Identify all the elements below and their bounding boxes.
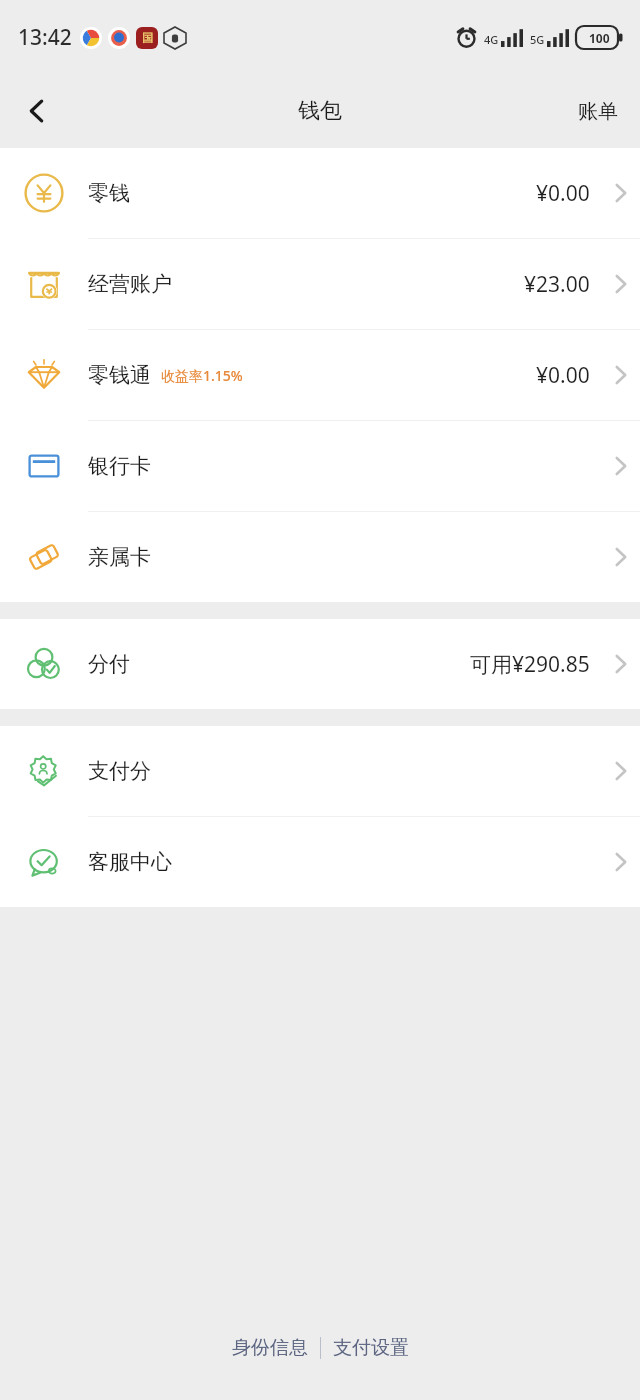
- staticText: 钱包: [298, 97, 342, 125]
- staticText: 零钱: [88, 180, 130, 206]
- button[interactable]: 亲属卡: [0, 512, 640, 602]
- staticText: 收益率1.15%: [161, 366, 243, 385]
- button[interactable]: Back: [0, 74, 74, 148]
- button[interactable]: 客服中心: [0, 817, 640, 907]
- button[interactable]: 账单: [556, 81, 640, 142]
- staticText: 分付: [88, 651, 130, 677]
- staticText: 银行卡: [88, 453, 151, 479]
- staticText: 支付分: [88, 758, 151, 784]
- button[interactable]: 支付设置: [321, 1328, 421, 1368]
- staticText: 100: [589, 30, 610, 46]
- staticText: 亲属卡: [88, 544, 151, 570]
- staticText: 5G: [530, 32, 545, 47]
- staticText: ¥23.00: [524, 270, 590, 299]
- button[interactable]: 零钱通: [0, 330, 640, 421]
- staticText: ¥0.00: [536, 361, 590, 390]
- button[interactable]: 零钱: [0, 148, 640, 239]
- staticText: 账单: [578, 99, 618, 124]
- staticText: 经营账户: [88, 271, 172, 297]
- staticText: 国: [142, 31, 153, 45]
- staticText: 零钱通: [88, 362, 151, 388]
- staticText: ¥0.00: [536, 179, 590, 208]
- button[interactable]: 银行卡: [0, 421, 640, 512]
- button[interactable]: 经营账户: [0, 239, 640, 330]
- staticText: 客服中心: [88, 849, 172, 875]
- button[interactable]: 支付分: [0, 726, 640, 817]
- staticText: 支付设置: [333, 1336, 409, 1360]
- staticText: 可用¥290.85: [470, 650, 590, 679]
- staticText: 4G: [484, 32, 499, 47]
- staticText: 身份信息: [232, 1336, 308, 1360]
- button[interactable]: 分付: [0, 619, 640, 709]
- staticText: 13:42: [18, 23, 72, 52]
- button[interactable]: 身份信息: [220, 1328, 320, 1368]
